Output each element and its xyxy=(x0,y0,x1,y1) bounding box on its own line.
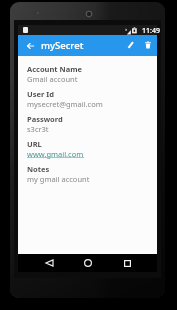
staticText: mysecret@gmail.com xyxy=(27,99,103,109)
staticText: Notes xyxy=(27,164,50,174)
button[interactable]: Edit xyxy=(120,35,140,55)
staticText: Gmail account xyxy=(27,74,78,84)
staticText: mySecret xyxy=(41,39,84,52)
staticText: www.gmail.com xyxy=(27,149,84,159)
button[interactable]: www.gmail.com xyxy=(27,149,84,159)
staticText: 11:49 xyxy=(142,26,160,36)
staticText: URL xyxy=(27,139,42,149)
button[interactable]: Back xyxy=(21,35,40,56)
staticText: s3cr3t xyxy=(27,124,49,134)
button[interactable]: Home xyxy=(75,254,101,272)
button[interactable]: Back xyxy=(36,254,62,272)
staticText: Account Name xyxy=(27,64,82,74)
staticText: User Id xyxy=(27,89,54,99)
staticText: my gmail account xyxy=(27,174,90,184)
button[interactable]: Delete xyxy=(138,35,158,55)
staticText: Password xyxy=(27,114,63,124)
button[interactable]: Recents xyxy=(114,254,140,272)
